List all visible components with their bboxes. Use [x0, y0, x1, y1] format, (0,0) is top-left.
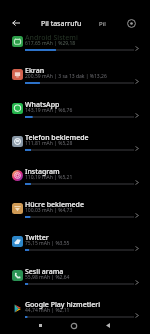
staticText: WhatsApp [25, 100, 60, 110]
staticText: 100,03 mAh | %4,73 [25, 207, 73, 214]
staticText: Google Play hizmetleri [25, 300, 101, 310]
staticText: 111,81 mAh | %5,28 [25, 140, 73, 147]
button[interactable]: WhatsApp [0, 96, 150, 127]
button[interactable]: Sesli arama [0, 263, 150, 294]
staticText: Ekran [25, 66, 45, 76]
button[interactable]: Telefon beklemede [0, 129, 150, 160]
staticText: Hücre beklemede [25, 200, 84, 210]
staticText: Instagram [25, 167, 60, 177]
staticText: 200,59 mAh | 3 sa 13 dak | %13,26 [25, 73, 107, 80]
staticText: Sesli arama [25, 267, 64, 277]
button[interactable]: Hücre beklemede [0, 196, 150, 227]
staticText: 617,65 mAh | %29,18 [25, 40, 76, 47]
staticText: Telefon beklemede [25, 133, 89, 143]
button[interactable]: Recent apps [33, 318, 48, 333]
staticText: Android Sistemi [25, 33, 78, 43]
button[interactable]: Ekran [0, 62, 150, 93]
staticText: 110,19 mAh | %5,21 [25, 174, 73, 181]
button[interactable]: Pil [99, 20, 106, 28]
button[interactable]: Google Play hizmetleri [0, 296, 150, 327]
staticText: Twitter [25, 233, 49, 243]
staticText: 75,15 mAh | %3,55 [25, 240, 70, 247]
button[interactable]: Instagram [0, 163, 150, 194]
staticText: 55,98 mAh | %2,64 [25, 274, 70, 281]
button[interactable]: Settings [124, 16, 139, 31]
staticText: 143,19 mAh | %6,76 [25, 107, 73, 114]
staticText: Pil tasarrufu [41, 19, 82, 29]
staticText: 44,74 mAh | %2,11 [25, 307, 70, 314]
button[interactable]: Back [100, 318, 115, 333]
button[interactable]: Home [66, 318, 81, 333]
button[interactable]: Back [8, 15, 24, 31]
button[interactable]: Android Sistemi [0, 29, 150, 60]
button[interactable]: Twitter [0, 229, 150, 260]
